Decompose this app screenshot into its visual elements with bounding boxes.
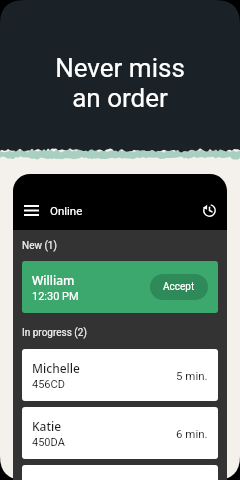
staticText: Katie: [32, 418, 62, 434]
staticText: Michelle: [32, 360, 80, 376]
staticText: 5 min.: [176, 369, 208, 382]
staticText: 12:30 PM: [32, 290, 79, 303]
staticText: New (1): [22, 240, 57, 252]
staticText: Online: [50, 204, 83, 217]
button[interactable]: Michelle: [22, 349, 218, 401]
button[interactable]: Sam: [22, 465, 218, 480]
staticText: Never miss: [55, 53, 185, 83]
button[interactable]: William: [22, 261, 218, 313]
staticText: 6 min.: [176, 427, 208, 440]
button[interactable]: History: [196, 197, 222, 223]
button[interactable]: Accept: [150, 274, 208, 300]
staticText: William: [32, 272, 75, 288]
staticText: In progress (2): [22, 327, 87, 339]
button[interactable]: Menu: [18, 197, 44, 223]
staticText: an order: [72, 83, 168, 113]
staticText: 450DA: [32, 436, 65, 449]
staticText: 456CD: [32, 378, 65, 391]
button[interactable]: Katie: [22, 407, 218, 459]
staticText: Accept: [163, 281, 195, 293]
